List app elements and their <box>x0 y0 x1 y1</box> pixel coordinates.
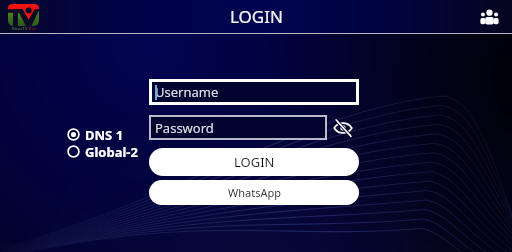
staticText: Global-2 <box>85 143 138 160</box>
staticText: LOGIN <box>230 5 283 28</box>
button[interactable]: Username <box>149 79 359 105</box>
staticText: Password <box>155 119 214 137</box>
button[interactable]: App logo <box>8 3 39 31</box>
button[interactable]: WhatsApp <box>149 180 359 205</box>
button[interactable]: DNS 1 <box>67 126 124 143</box>
button[interactable]: Users <box>480 7 499 26</box>
staticText: WhatsApp <box>228 185 281 200</box>
staticText: DNS 1 <box>85 126 124 143</box>
staticText: Pro <box>29 26 36 31</box>
button[interactable]: Global-2 <box>67 143 138 160</box>
button[interactable]: LOGIN <box>149 148 359 176</box>
staticText: BisoxTV <box>12 26 29 31</box>
button[interactable]: Password <box>149 115 327 140</box>
staticText: LOGIN <box>234 153 275 171</box>
button[interactable]: Toggle password visibility <box>333 118 353 138</box>
staticText: Username <box>155 83 219 101</box>
